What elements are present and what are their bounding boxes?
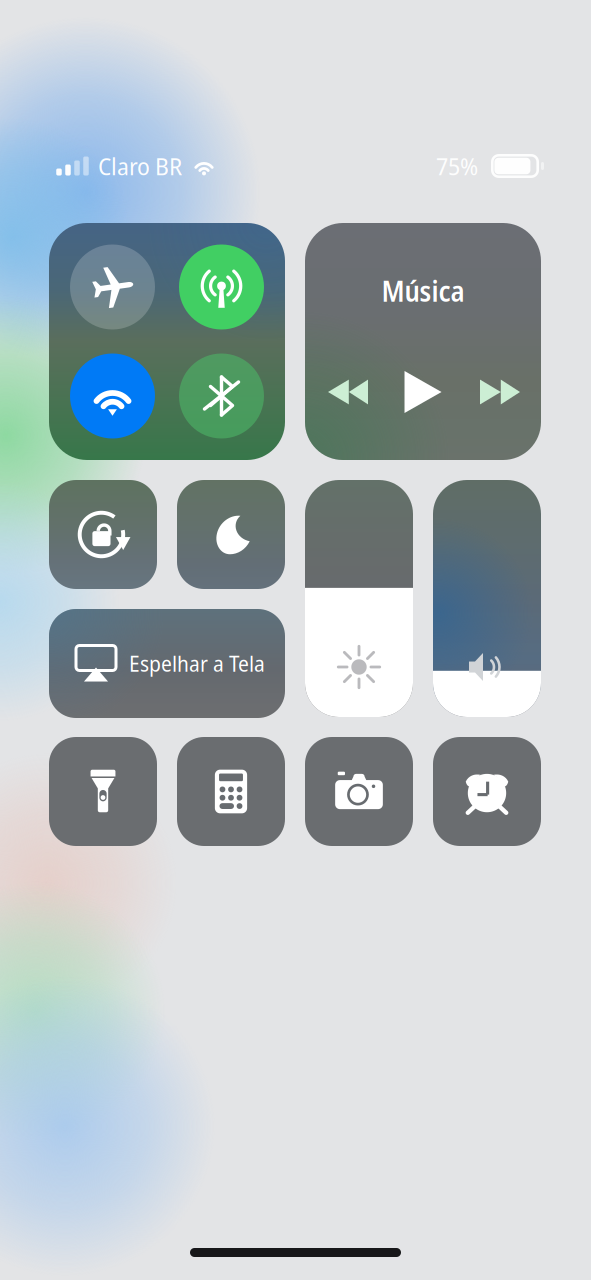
button[interactable]: Camera [305,737,413,846]
button[interactable]: Flashlight [49,737,157,846]
button[interactable]: Wi-Fi [70,353,155,438]
button[interactable]: Bluetooth [179,353,264,438]
button[interactable]: Volume [433,480,541,717]
button[interactable]: Play [390,366,456,418]
button[interactable]: Fast Forward [467,366,533,418]
button[interactable]: Rotation Lock [49,480,157,589]
button[interactable]: Cellular Data [179,244,264,329]
staticText: 75% [436,150,478,182]
button[interactable]: Alarm [433,737,541,846]
button[interactable]: Airplane Mode [70,244,155,329]
button[interactable]: Do Not Disturb [177,480,285,589]
button[interactable]: Rewind [315,366,381,418]
button[interactable]: Calculator [177,737,285,846]
staticText: Música [381,272,464,310]
staticText: Espelhar a Tela [129,649,265,678]
staticText: Claro BR [98,150,182,182]
button[interactable]: Brightness [305,480,413,717]
button[interactable]: Espelhar a Tela [49,609,285,718]
